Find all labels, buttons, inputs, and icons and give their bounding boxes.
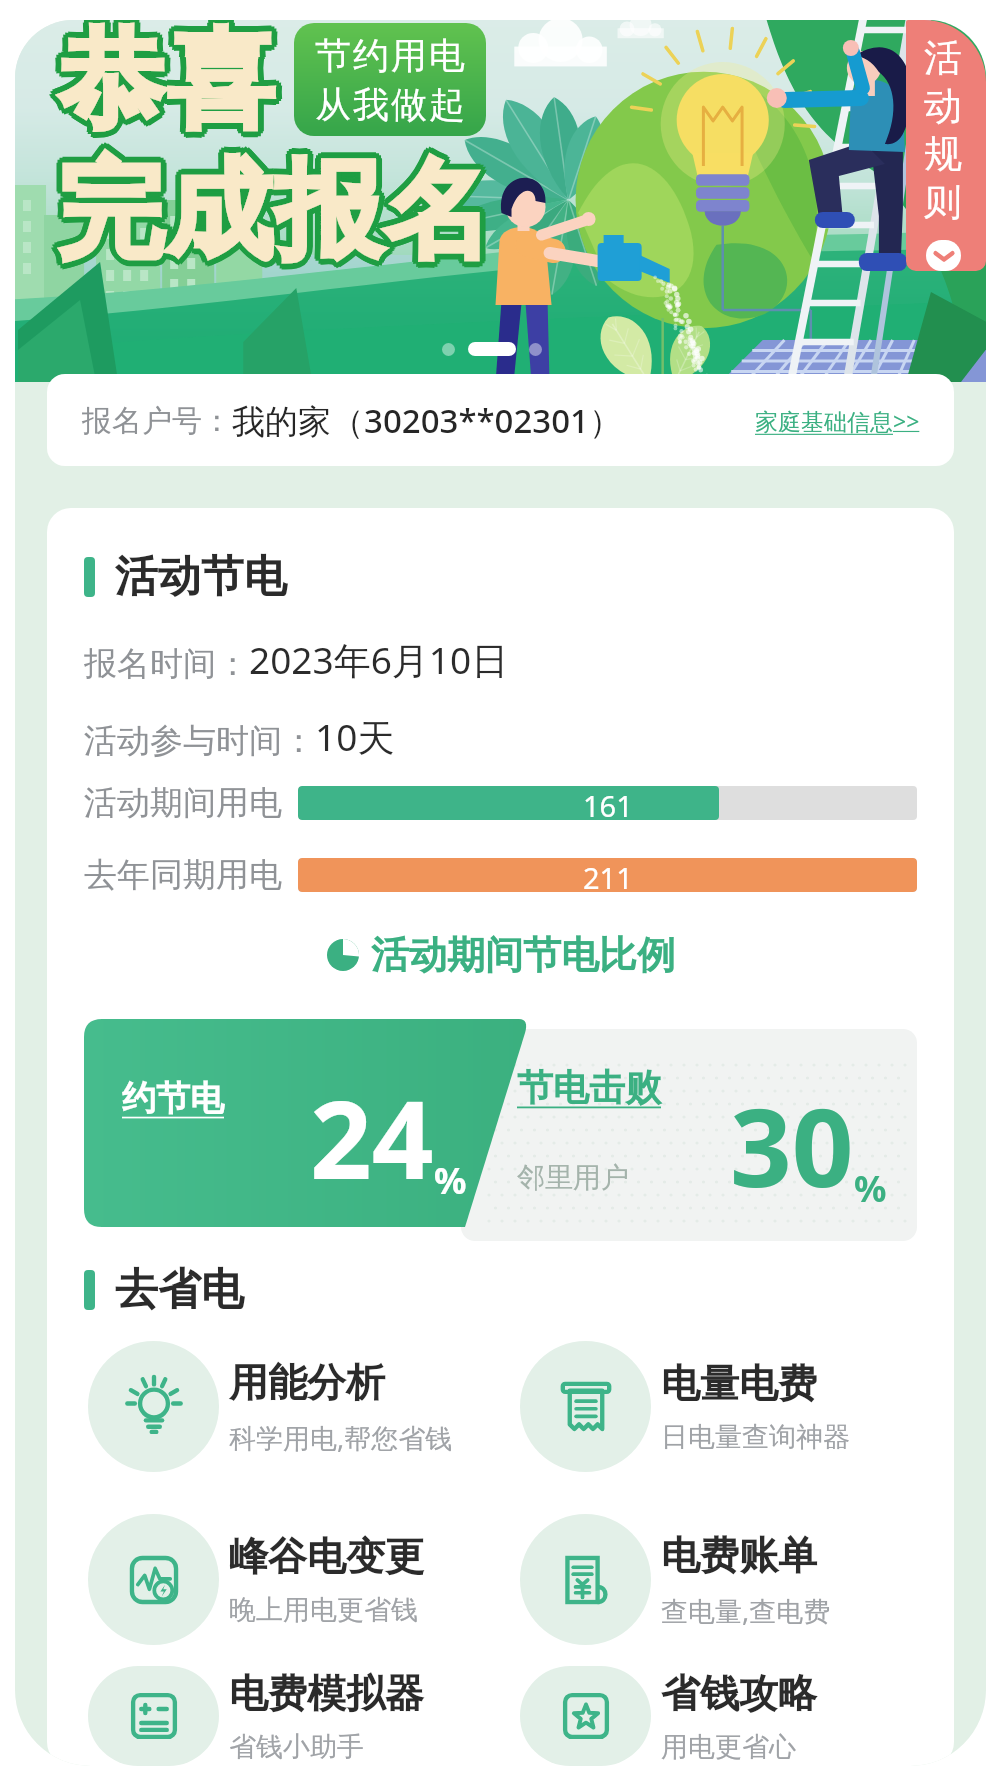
staticText: 完成报名 bbox=[61, 146, 497, 281]
staticText: 科学用电,帮您省钱 bbox=[229, 1419, 453, 1456]
button[interactable]: 电费模拟器 bbox=[88, 1666, 500, 1766]
staticText: 恭喜 bbox=[57, 20, 275, 149]
staticText: 报名时间： bbox=[84, 643, 249, 685]
button[interactable]: 电量电费 bbox=[520, 1320, 917, 1493]
staticText: 完成报名 bbox=[61, 141, 497, 276]
staticText: 恭喜 bbox=[57, 20, 275, 143]
staticText: % bbox=[854, 1164, 887, 1213]
staticText: 省钱攻略 bbox=[661, 1669, 817, 1718]
staticText: 活动期间用电 bbox=[84, 782, 282, 824]
staticText: 活动节电 bbox=[115, 550, 287, 604]
button[interactable]: 省钱攻略 bbox=[520, 1666, 917, 1766]
button[interactable]: 报名户号： bbox=[47, 374, 954, 466]
staticText: 活 bbox=[924, 34, 962, 82]
staticText: 用能分析 bbox=[229, 1358, 385, 1407]
staticText: 恭喜 bbox=[63, 20, 281, 149]
staticText: 30 bbox=[730, 1072, 854, 1219]
staticText: 恭喜 bbox=[55, 20, 273, 154]
staticText: 峰谷电变更 bbox=[229, 1532, 424, 1581]
staticText: 10天 bbox=[315, 711, 395, 762]
staticText: 活动期间节电比例 bbox=[371, 931, 675, 979]
staticText: 恭喜 bbox=[62, 20, 280, 146]
staticText: 完成报名 bbox=[53, 139, 489, 274]
staticText: 完成报名 bbox=[59, 139, 495, 274]
staticText: 恭喜 bbox=[52, 20, 270, 146]
staticText: 完成报名 bbox=[56, 150, 492, 285]
staticText: 完成报名 bbox=[56, 138, 492, 273]
staticText: 恭喜 bbox=[51, 20, 269, 149]
staticText: 日电量查询神器 bbox=[661, 1420, 850, 1454]
staticText: 完成报名 bbox=[51, 146, 487, 281]
staticText: 规 bbox=[924, 130, 962, 178]
staticText: 约节电 bbox=[122, 1077, 224, 1120]
staticText: 动 bbox=[924, 82, 962, 130]
staticText: 报名户号： bbox=[82, 402, 232, 440]
staticText: 我的家（30203**02301） bbox=[232, 398, 622, 443]
staticText: 节电击败 bbox=[517, 1065, 661, 1110]
staticText: 电费账单 bbox=[661, 1531, 817, 1580]
staticText: 完成报名 bbox=[54, 149, 490, 284]
staticText: 去年同期用电 bbox=[84, 854, 282, 896]
staticText: 则 bbox=[924, 178, 962, 226]
staticText: 家庭基础信息>> bbox=[755, 405, 920, 436]
staticText: 24 bbox=[310, 1064, 434, 1211]
staticText: % bbox=[434, 1156, 467, 1205]
staticText: 电量电费 bbox=[661, 1359, 817, 1408]
staticText: 恭喜 bbox=[57, 20, 275, 155]
staticText: 完成报名 bbox=[62, 144, 498, 279]
button[interactable]: 电费账单 bbox=[520, 1493, 917, 1666]
staticText: 节约用电 bbox=[314, 33, 466, 78]
button[interactable]: 用能分析 bbox=[88, 1320, 500, 1493]
button[interactable]: 峰谷电变更 bbox=[88, 1493, 500, 1666]
staticText: 从我做起 bbox=[314, 82, 466, 127]
staticText: 完成报名 bbox=[50, 144, 486, 279]
staticText: 161 bbox=[583, 786, 633, 820]
staticText: 电费模拟器 bbox=[229, 1669, 424, 1718]
staticText: 恭喜 bbox=[52, 20, 270, 151]
staticText: 去省电 bbox=[115, 1263, 244, 1317]
staticText: 完成报名 bbox=[59, 149, 495, 284]
staticText: 恭喜 bbox=[60, 20, 278, 154]
staticText: 恭喜 bbox=[60, 20, 278, 144]
button[interactable]: 节电击败 bbox=[461, 1029, 917, 1241]
staticText: 活动参与时间： bbox=[84, 720, 315, 762]
staticText: 2023年6月10日 bbox=[249, 634, 509, 685]
staticText: 完成报名 bbox=[51, 141, 487, 276]
button[interactable]: 活动规则 bbox=[906, 20, 986, 271]
staticText: 邻里用户 bbox=[517, 1160, 629, 1195]
staticText: 恭喜 bbox=[62, 20, 280, 151]
staticText: 晚上用电更省钱 bbox=[229, 1593, 418, 1627]
staticText: 完成报名 bbox=[56, 144, 492, 279]
staticText: 查电量,查电费 bbox=[661, 1592, 831, 1629]
staticText: 省钱小助手 bbox=[229, 1730, 364, 1764]
staticText: 恭喜 bbox=[54, 20, 272, 144]
staticText: 211 bbox=[583, 858, 633, 892]
staticText: 用电更省心 bbox=[661, 1730, 796, 1764]
